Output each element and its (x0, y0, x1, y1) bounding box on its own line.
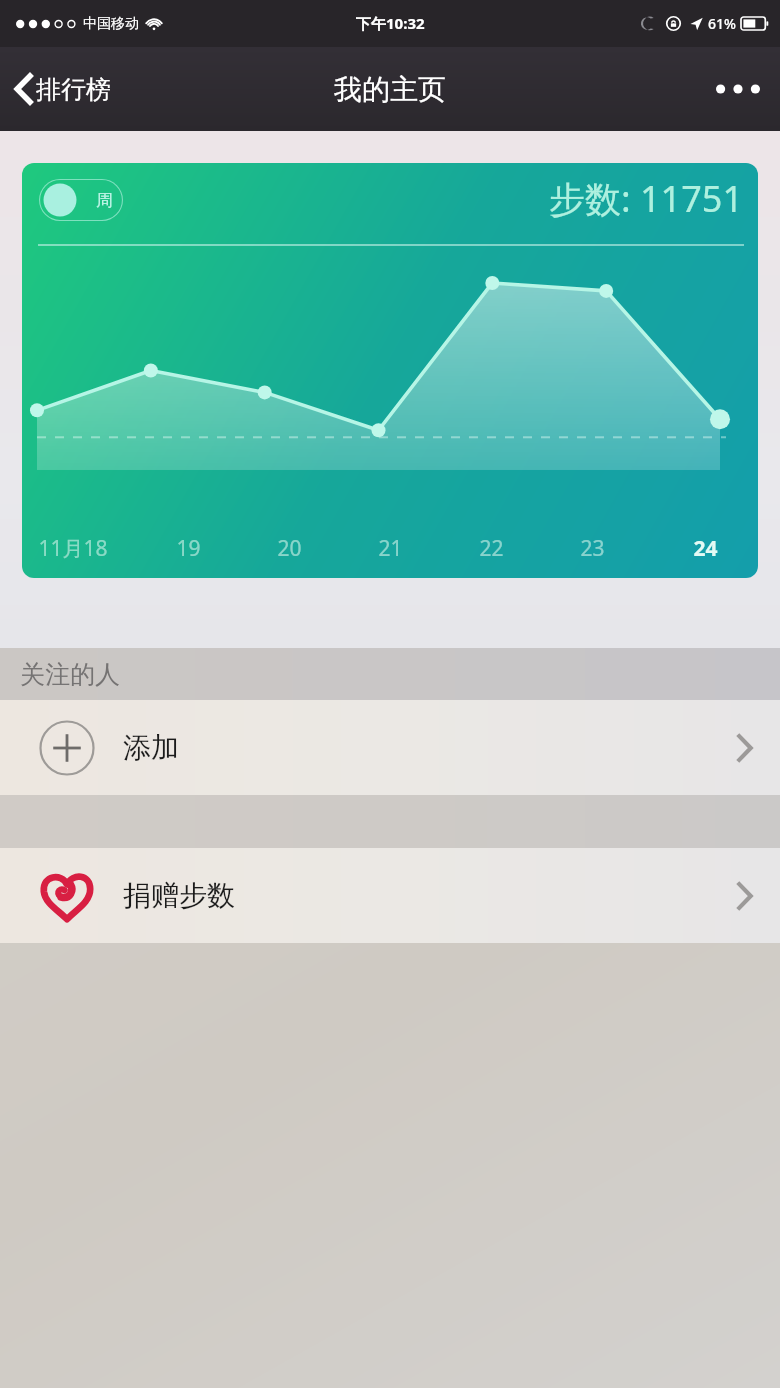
staticText: 22 (479, 534, 504, 563)
staticText: 中国移动 (83, 15, 139, 33)
button[interactable]: Switch period (22, 163, 758, 578)
staticText: 19 (176, 534, 201, 563)
staticText: 捐赠步数 (123, 878, 235, 913)
button[interactable]: 捐赠步数 (0, 848, 780, 943)
staticText: 排行榜 (36, 74, 111, 105)
button[interactable]: More options (696, 66, 780, 112)
staticText: 11月18 (38, 534, 108, 563)
button[interactable]: Switch period (39, 179, 123, 221)
staticText: 20 (277, 534, 302, 563)
staticText: 关注的人 (20, 659, 120, 690)
staticText: 步数: 11751 (549, 174, 743, 223)
staticText: 61% (708, 14, 736, 33)
button[interactable]: 添加 (0, 700, 780, 795)
staticText: 我的主页 (334, 72, 446, 107)
staticText: 添加 (123, 730, 179, 765)
button[interactable]: 排行榜 (0, 62, 127, 116)
staticText: 24 (693, 534, 718, 563)
staticText: 21 (378, 534, 403, 563)
staticText: 23 (580, 534, 605, 563)
staticText: 周 (96, 190, 113, 211)
staticText: 下午10:32 (356, 13, 425, 33)
